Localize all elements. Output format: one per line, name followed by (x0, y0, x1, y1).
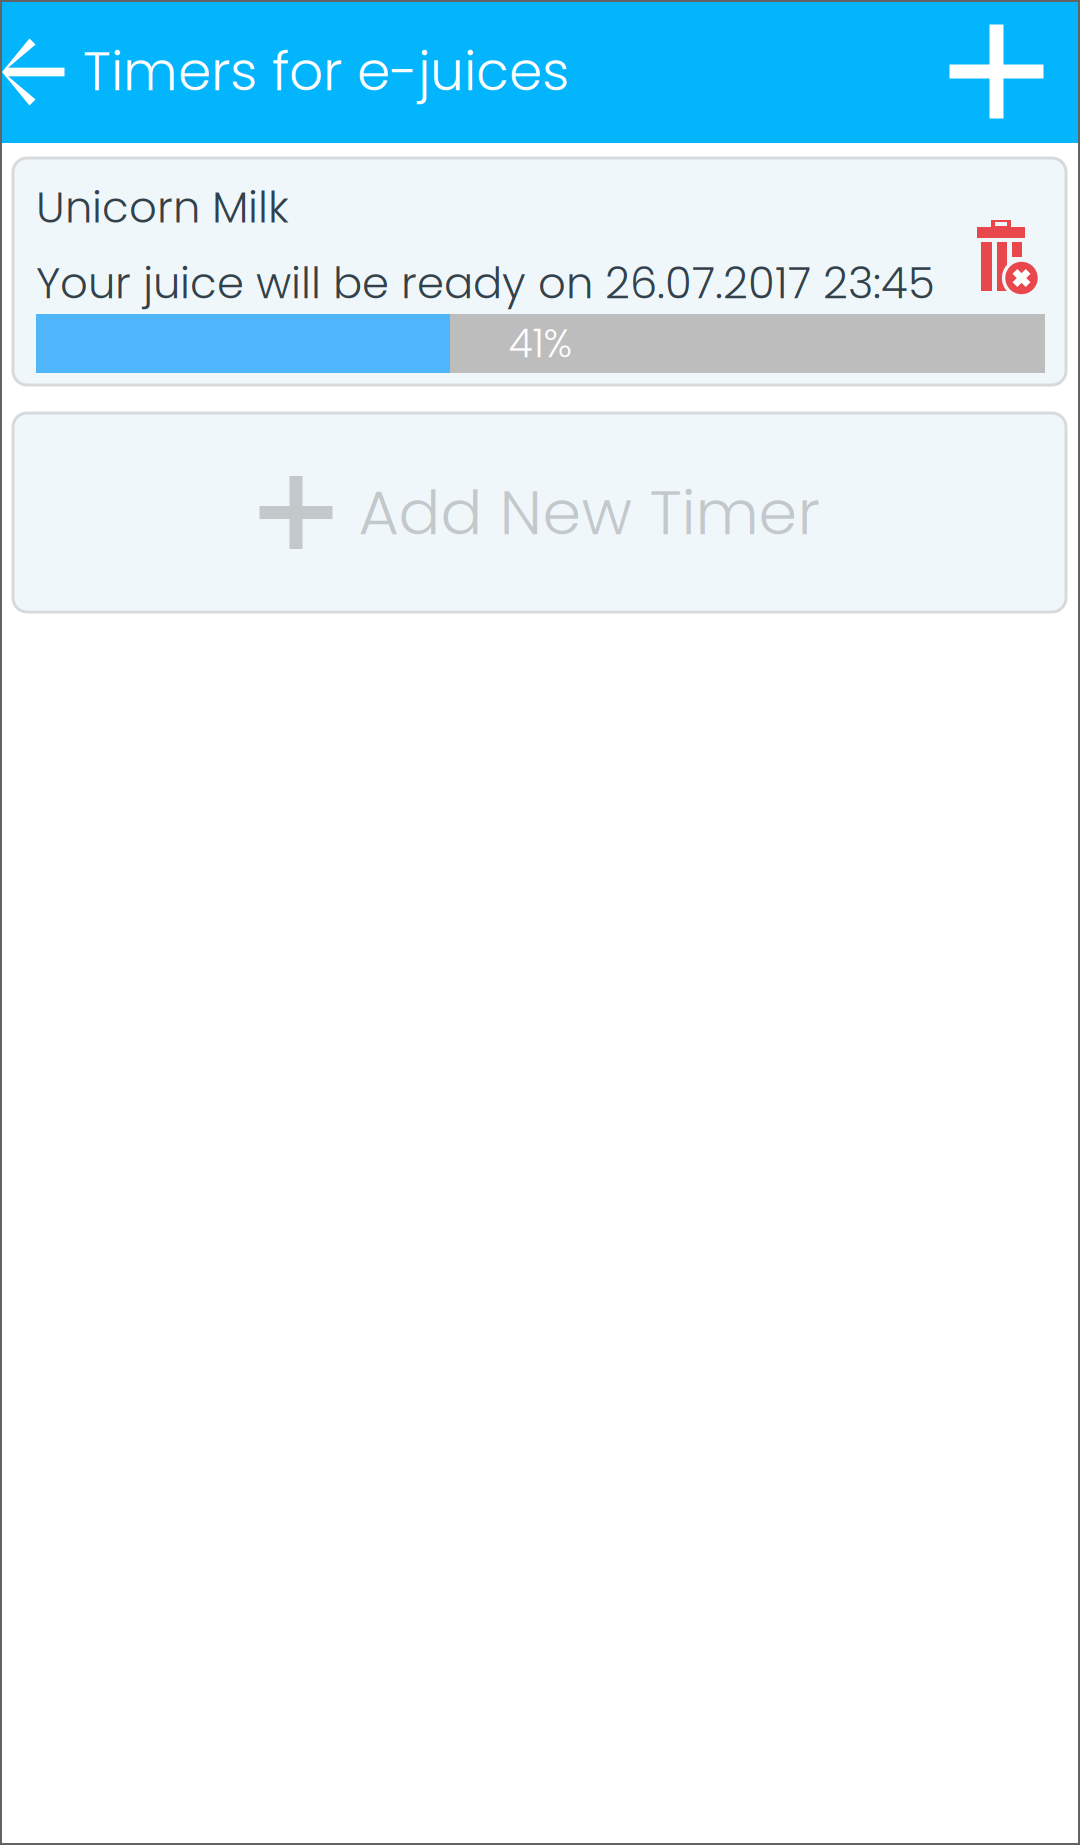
staticText: 41% (508, 316, 572, 371)
button[interactable]: Delete timer (961, 158, 1066, 311)
staticText: Timers for e-juices (83, 34, 569, 109)
button[interactable]: Add New Timer (13, 413, 1066, 612)
staticText: Unicorn Milk (36, 177, 289, 238)
button[interactable]: Add timer (931, 0, 1080, 143)
staticText: Your juice will be ready on 26.07.2017 2… (36, 253, 935, 313)
staticText: Add New Timer (358, 469, 819, 556)
button[interactable]: Back (0, 0, 68, 143)
